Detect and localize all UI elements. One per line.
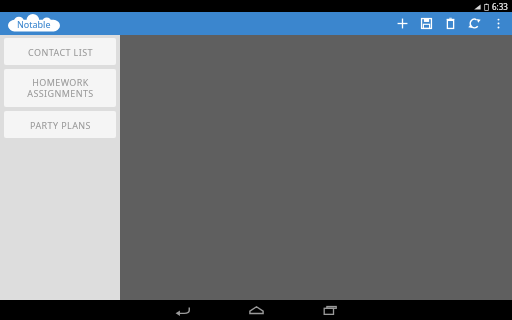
button[interactable]: Home: [241, 300, 271, 320]
staticText: CONTACT LIST: [28, 46, 93, 58]
button[interactable]: CONTACT LIST: [4, 38, 116, 65]
button[interactable]: Delete: [438, 12, 462, 35]
staticText: HOMEWORK ASSIGNMENTS: [27, 76, 94, 100]
button[interactable]: Add: [390, 12, 414, 35]
staticText: Notable: [17, 18, 51, 30]
button[interactable]: Save: [414, 12, 438, 35]
button[interactable]: Notable: [5, 14, 63, 33]
button[interactable]: Back: [167, 300, 197, 320]
button[interactable]: HOMEWORK ASSIGNMENTS: [4, 69, 116, 107]
staticText: 6:33: [492, 1, 508, 12]
button[interactable]: PARTY PLANS: [4, 111, 116, 138]
button[interactable]: More options: [486, 12, 510, 35]
staticText: PARTY PLANS: [30, 119, 91, 131]
button[interactable]: Recents: [315, 300, 345, 320]
button[interactable]: Refresh: [462, 12, 486, 35]
